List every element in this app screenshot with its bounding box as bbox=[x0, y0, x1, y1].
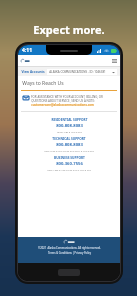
button[interactable]: TECHNICAL SUPPORT bbox=[18, 135, 120, 154]
button[interactable]: Home bbox=[58, 269, 80, 276]
staticText: 4:11 bbox=[22, 47, 32, 54]
staticText: RESIDENTIAL SUPPORT bbox=[51, 118, 88, 122]
staticText: ©2021 Alaska Communications. All rights … bbox=[38, 246, 101, 250]
staticText: 800-360-7556 bbox=[56, 161, 83, 167]
staticText: MON–FRI 8 AM–6 PM bbox=[57, 130, 82, 133]
staticText: MON–FRI 8 AM–6 PM SAT 9 AM–5 PM bbox=[47, 168, 91, 171]
staticText: TECHNICAL SUPPORT bbox=[52, 137, 86, 141]
staticText: 800-808-8083 bbox=[56, 123, 83, 129]
button[interactable]: Menu bbox=[111, 58, 117, 64]
staticText: BUSINESS SUPPORT bbox=[54, 156, 85, 160]
staticText: ALASKA COMMUNICATIONS - ID: 1046381 bbox=[49, 70, 106, 74]
staticText: QUESTIONS ABOUT SERVICE, SEND US A NOTE: bbox=[31, 99, 95, 103]
staticText: Ways to Reach Us bbox=[22, 80, 64, 87]
button[interactable]: ALASKA COMMUNICATIONS - ID: 1046381 bbox=[49, 69, 115, 75]
button[interactable]: RESIDENTIAL SUPPORT bbox=[18, 116, 120, 135]
staticText: View Accounts bbox=[21, 70, 45, 74]
button[interactable]: BUSINESS SUPPORT bbox=[18, 154, 120, 173]
staticText: customercare@alaskacommunications.com bbox=[31, 103, 94, 107]
button[interactable]: FOR ASSISTANCE WITH YOUR ACCOUNT, BILLIN… bbox=[21, 93, 117, 109]
staticText: MON–FRI 8 AM–8 PM SAT–SUN 9 AM–6 PM bbox=[44, 149, 94, 152]
staticText: Terms & Conditions | Privacy Policy bbox=[48, 251, 91, 255]
staticText: 800-808-8083 bbox=[56, 142, 83, 148]
staticText: Expect more. bbox=[33, 22, 105, 37]
staticText: FOR ASSISTANCE WITH YOUR ACCOUNT, BILLIN… bbox=[31, 95, 103, 99]
